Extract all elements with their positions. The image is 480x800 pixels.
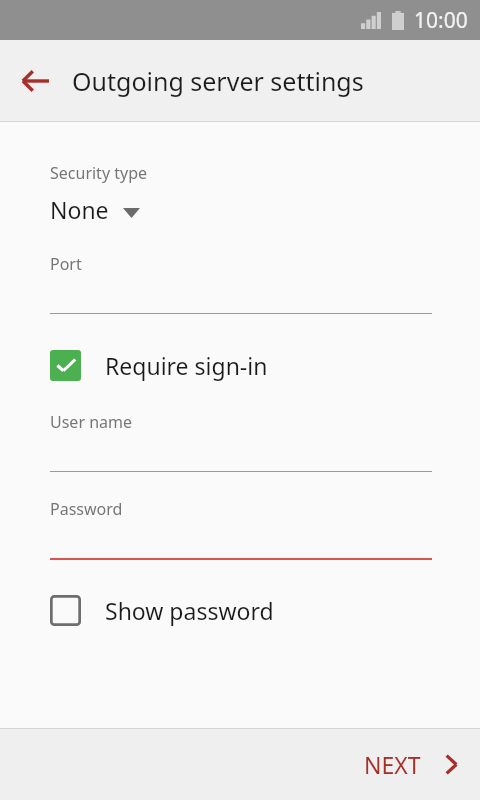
staticText: None <box>50 194 109 225</box>
staticText: Port <box>50 253 82 275</box>
staticText: Security type <box>50 162 148 184</box>
staticText: User name <box>50 411 133 433</box>
staticText: Outgoing server settings <box>72 64 364 98</box>
button[interactable]: Require sign-in <box>0 346 480 385</box>
staticText: Password <box>50 498 123 520</box>
staticText: 10:00 <box>414 6 468 35</box>
button[interactable]: Show password <box>0 591 480 630</box>
button[interactable]: Back <box>8 54 62 108</box>
staticText: Require sign-in <box>105 350 268 381</box>
staticText: Show password <box>105 595 274 626</box>
staticText: NEXT <box>364 749 421 780</box>
button[interactable]: NEXT <box>334 729 480 800</box>
button[interactable]: None <box>0 192 480 227</box>
